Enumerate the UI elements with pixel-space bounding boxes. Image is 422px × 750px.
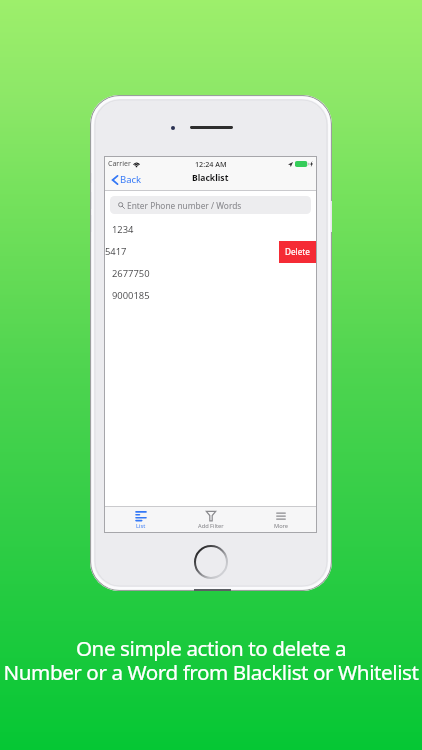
staticText: One simple action to delete a Number or … bbox=[0, 634, 422, 687]
staticText: More bbox=[274, 522, 289, 530]
button[interactable]: Delete bbox=[279, 241, 316, 263]
staticText: Enter Phone number / Words bbox=[127, 200, 242, 211]
button[interactable]: 5417 bbox=[105, 241, 316, 263]
button[interactable]: More bbox=[246, 507, 316, 532]
staticText: Carrier bbox=[108, 159, 131, 169]
button[interactable]: Back bbox=[105, 171, 147, 188]
staticText: 1234 bbox=[112, 223, 134, 236]
button[interactable]: Enter Phone number / Words bbox=[110, 196, 311, 214]
staticText: 9000185 bbox=[112, 289, 150, 302]
staticText: List bbox=[136, 522, 146, 530]
staticText: 2677750 bbox=[112, 267, 150, 280]
staticText: Back bbox=[120, 173, 142, 186]
button[interactable]: 1234 bbox=[105, 219, 316, 241]
staticText: Delete bbox=[285, 246, 310, 257]
button[interactable]: 9000185 bbox=[105, 285, 316, 307]
staticText: 5417 bbox=[105, 245, 127, 258]
button[interactable]: 2677750 bbox=[105, 263, 316, 285]
button[interactable]: List bbox=[105, 507, 176, 532]
staticText: 12:24 AM bbox=[195, 159, 227, 169]
staticText: Add Filter bbox=[198, 522, 224, 530]
staticText: Blacklist bbox=[192, 172, 229, 184]
button[interactable]: Add Filter bbox=[176, 507, 246, 532]
